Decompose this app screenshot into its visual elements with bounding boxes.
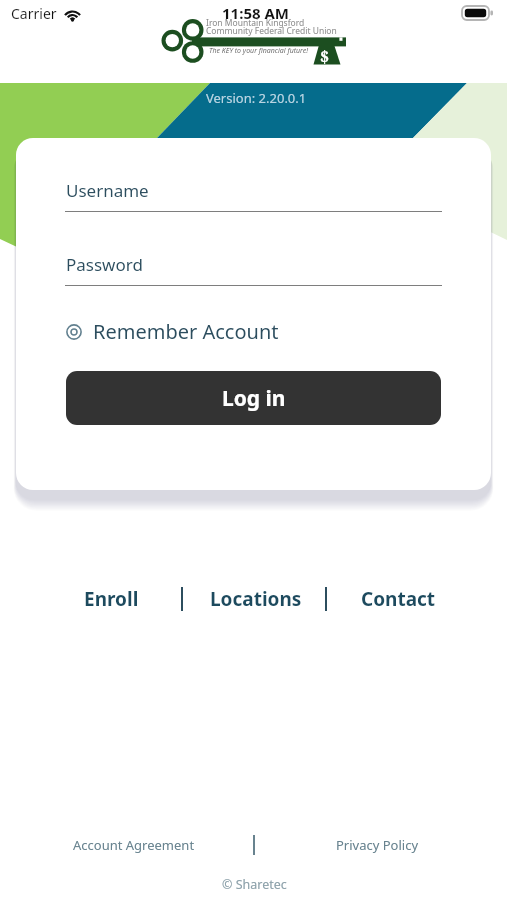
button[interactable]: Privacy Policy [336, 836, 419, 854]
button[interactable]: Account Agreement [73, 836, 195, 854]
other: Remember account [64, 322, 84, 342]
staticText: Password [66, 253, 143, 276]
button[interactable]: Contact [361, 586, 436, 612]
staticText: Account Agreement [73, 836, 195, 854]
staticText: Enroll [84, 586, 139, 612]
staticText: The KEY to your financial future! [209, 46, 309, 56]
button[interactable]: Enroll [84, 586, 139, 612]
staticText: $ [320, 45, 330, 67]
staticText: Remember Account [93, 318, 279, 345]
staticText: Version: 2.20.0.1 [206, 89, 307, 107]
staticText: Carrier [11, 4, 57, 23]
staticText: Contact [361, 586, 436, 612]
staticText: Iron Mountain Kingsford [206, 17, 305, 29]
staticText: Locations [210, 586, 302, 612]
staticText: Community Federal Credit Union [206, 25, 337, 37]
button[interactable]: Locations [210, 586, 302, 612]
button[interactable]: Remember account [64, 318, 279, 345]
staticText: © Sharetec [222, 876, 287, 893]
staticText: Privacy Policy [336, 836, 419, 854]
staticText: 11:58 AM [222, 3, 289, 23]
button[interactable]: Log in [66, 371, 441, 425]
staticText: Log in [222, 384, 286, 413]
staticText: Username [66, 179, 149, 202]
